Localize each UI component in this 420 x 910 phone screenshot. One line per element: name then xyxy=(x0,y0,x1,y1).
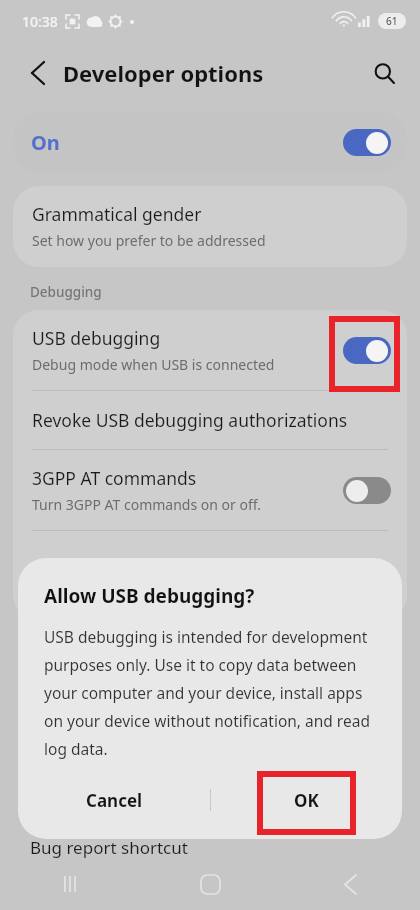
staticText: Bug report shortcut xyxy=(30,836,188,859)
button[interactable]: On xyxy=(13,112,407,172)
button[interactable]: USB debugging xyxy=(13,310,407,390)
staticText: Turn 3GPP AT commands on or off. xyxy=(32,495,262,514)
staticText: Allow USB debugging? xyxy=(44,583,255,609)
button[interactable] xyxy=(13,531,407,621)
staticText: USB debugging is intended for developmen… xyxy=(44,626,378,760)
staticText: Developer options xyxy=(63,58,264,88)
staticText: 10:38 xyxy=(22,12,58,31)
button[interactable]: Back xyxy=(18,53,58,93)
staticText: Debug mode when USB is connected xyxy=(32,355,275,374)
button[interactable]: Revoke USB debugging authorizations xyxy=(13,391,407,449)
button[interactable]: Search xyxy=(362,51,406,95)
staticText: 61 xyxy=(386,14,398,28)
staticText: Set how you prefer to be addressed xyxy=(32,231,266,250)
button[interactable]: Home xyxy=(140,858,280,910)
staticText: Debugging xyxy=(30,283,102,301)
button[interactable]: Toggle on xyxy=(343,129,391,156)
button[interactable]: 3GPP AT commands xyxy=(13,450,407,530)
staticText: Cancel xyxy=(86,789,143,812)
button[interactable]: Cancel xyxy=(18,767,210,833)
staticText: Grammatical gender xyxy=(32,202,202,226)
staticText: USB debugging xyxy=(32,326,161,350)
button[interactable]: OK xyxy=(210,767,402,833)
staticText: 3GPP AT commands xyxy=(32,466,197,490)
button[interactable]: Toggle on xyxy=(343,337,391,364)
button[interactable]: Toggle off xyxy=(343,477,391,504)
button[interactable]: Grammatical gender xyxy=(13,186,407,267)
staticText: Revoke USB debugging authorizations xyxy=(32,408,348,432)
staticText: OK xyxy=(294,789,319,812)
staticText: On xyxy=(31,129,60,156)
